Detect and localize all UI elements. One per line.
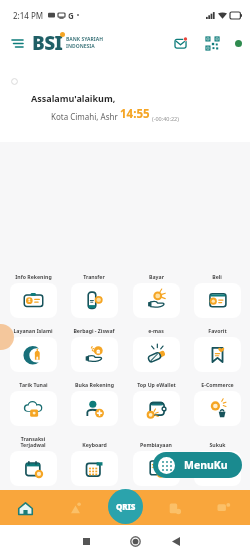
staticText: Transfer bbox=[83, 273, 105, 280]
button[interactable]: Back bbox=[164, 529, 188, 553]
staticText: Top Up eWallet bbox=[137, 381, 176, 388]
button[interactable]: MenuKu bbox=[153, 452, 242, 478]
staticText: QRIS bbox=[116, 501, 136, 512]
button[interactable]: QRIS bbox=[108, 489, 143, 524]
staticText: Info Rekening bbox=[15, 273, 52, 280]
staticText: Kota Cimahi, Ashr bbox=[51, 111, 120, 122]
button[interactable]: e-mas bbox=[127, 326, 185, 372]
staticText: Pembiayaan bbox=[140, 441, 172, 448]
button[interactable]: Pembiayaan bbox=[127, 434, 185, 486]
button[interactable]: Home bbox=[11, 494, 39, 522]
staticText: Buka Rekening bbox=[75, 381, 114, 388]
button[interactable]: Profile bbox=[231, 36, 245, 50]
staticText: Berbagi - Ziswaf bbox=[73, 327, 115, 334]
button[interactable]: Beli bbox=[188, 272, 246, 318]
staticText: INDONESIA bbox=[66, 43, 95, 50]
button[interactable]: Layanan Islami bbox=[4, 326, 62, 372]
button[interactable]: Chat bbox=[209, 494, 237, 522]
staticText: G bbox=[68, 10, 74, 21]
button[interactable]: Menu bbox=[7, 33, 27, 53]
staticText: Layanan Islami bbox=[13, 327, 53, 334]
staticText: BANK SYARIAH bbox=[66, 36, 104, 43]
button[interactable]: Transfer bbox=[65, 272, 123, 318]
button[interactable]: Favorit bbox=[188, 326, 246, 372]
staticText: Keyboard bbox=[82, 441, 107, 448]
staticText: e-mas bbox=[148, 327, 164, 334]
button[interactable]: Scan QR code bbox=[202, 33, 222, 53]
button[interactable]: Berbagi - Ziswaf bbox=[65, 326, 123, 372]
button[interactable]: Top Up eWallet bbox=[127, 380, 185, 426]
staticText: Favorit bbox=[208, 327, 227, 334]
button[interactable]: E-Commerce bbox=[188, 380, 246, 426]
button[interactable]: Buka Rekening bbox=[65, 380, 123, 426]
staticText: BSI bbox=[32, 30, 63, 56]
staticText: 14:55 bbox=[120, 106, 150, 122]
button[interactable]: Keyboard bbox=[65, 434, 123, 486]
button[interactable]: Info Rekening bbox=[4, 272, 62, 318]
staticText: E-Commerce bbox=[201, 381, 234, 388]
button[interactable]: Bayar bbox=[127, 272, 185, 318]
button[interactable]: Tarik Tunai bbox=[4, 380, 62, 426]
staticText: Bayar bbox=[149, 273, 164, 280]
button[interactable]: Inbox bbox=[171, 33, 191, 53]
staticText: (-00:40:22) bbox=[152, 115, 179, 122]
staticText: Sukuk bbox=[209, 441, 226, 448]
staticText: 2:14 PM bbox=[13, 10, 44, 21]
staticText: Beli bbox=[212, 273, 222, 280]
button[interactable]: Recent apps bbox=[74, 529, 98, 553]
button[interactable]: Transaksi Terjadwal bbox=[4, 434, 62, 486]
staticText: Tarik Tunai bbox=[19, 381, 48, 388]
button[interactable]: Locations bbox=[160, 494, 188, 522]
button[interactable]: Home bbox=[123, 529, 147, 553]
button[interactable]: Prayer bbox=[61, 494, 89, 522]
staticText: MenuKu bbox=[184, 458, 228, 472]
button[interactable]: Sukuk bbox=[188, 434, 246, 486]
staticText: Assalamu'alaikum, bbox=[31, 92, 116, 104]
staticText: Transaksi Terjadwal bbox=[20, 435, 46, 448]
